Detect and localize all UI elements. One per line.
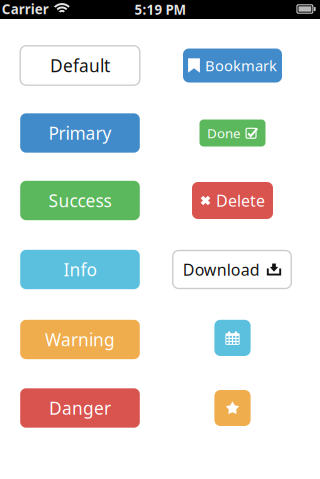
button[interactable]: Success <box>20 181 140 220</box>
button[interactable]: Calendar <box>214 320 251 356</box>
staticText: Default <box>50 54 110 77</box>
staticText: Done <box>207 124 241 142</box>
staticText: Primary <box>48 121 111 144</box>
button[interactable]: Download <box>173 250 291 288</box>
staticText: Carrier <box>2 0 49 18</box>
staticText: 5:19 PM <box>134 1 186 18</box>
staticText: Download <box>183 259 260 280</box>
button[interactable]: Danger <box>20 388 140 428</box>
button[interactable]: Done <box>199 119 265 146</box>
button[interactable]: Delete <box>192 182 273 219</box>
button[interactable]: Favorite <box>214 390 251 426</box>
staticText: Warning <box>45 328 115 351</box>
button[interactable]: Primary <box>20 113 140 153</box>
staticText: Delete <box>216 190 265 211</box>
button[interactable]: Default <box>20 46 140 85</box>
button[interactable]: Warning <box>20 320 140 359</box>
staticText: Danger <box>49 396 111 419</box>
staticText: Success <box>48 189 111 212</box>
staticText: Info <box>63 258 96 281</box>
button[interactable]: Bookmark <box>183 48 282 82</box>
staticText: Bookmark <box>205 56 277 75</box>
button[interactable]: Info <box>20 250 140 289</box>
